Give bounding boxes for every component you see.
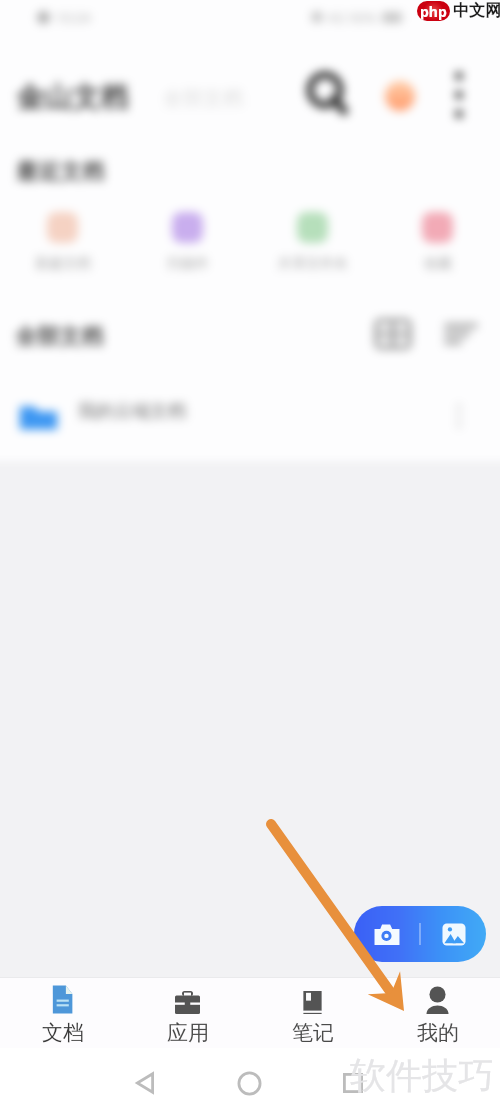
button[interactable]: 笔记 [250,978,375,1048]
staticText: 我的云端文档 [78,400,186,423]
button[interactable]: Profile [385,81,415,111]
button[interactable]: 文档 [0,978,125,1048]
staticText: php [420,2,447,21]
button[interactable]: New scan [354,906,486,962]
button[interactable]: Home [233,1067,265,1099]
staticText: 新建文档 [35,255,91,273]
staticText: 最近文档 [16,158,104,186]
button[interactable]: 共享文件夹 [250,212,375,273]
staticText: 金山文档 [16,80,128,115]
button[interactable]: 我的云端文档 [0,392,500,440]
button[interactable]: Switch view [375,318,411,350]
button[interactable]: 扫描件 [125,212,250,273]
button[interactable]: 收藏 [375,212,500,273]
staticText: 共享文件夹 [278,255,348,273]
button[interactable]: More options [446,68,474,122]
staticText: 10:24 [55,8,91,27]
button[interactable]: 应用 [125,978,250,1048]
staticText: 扫描件 [167,255,209,273]
staticText: 4G 96% [327,8,377,27]
staticText: 中文网 [453,1,500,21]
staticText: 我的 [417,1020,459,1046]
button[interactable]: 新建文档 [0,212,125,273]
button[interactable]: 我的 [375,978,500,1048]
staticText: 文档 [42,1020,84,1046]
button[interactable]: Sort [443,322,479,346]
button[interactable]: Search [303,68,351,120]
staticText: 软件技巧 [350,1053,494,1098]
staticText: 应用 [167,1020,209,1046]
button[interactable]: Back [129,1067,161,1099]
button[interactable]: Recents [337,1067,369,1099]
staticText: 收藏 [424,255,452,273]
staticText: 笔记 [292,1020,334,1046]
staticText: 全部文档 [15,323,103,351]
